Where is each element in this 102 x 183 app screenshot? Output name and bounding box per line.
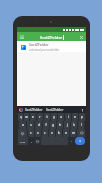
staticText: x (37, 131, 39, 135)
button[interactable]: r (37, 113, 43, 121)
button[interactable]: y (51, 113, 57, 121)
button[interactable]: g (50, 121, 56, 129)
button[interactable]: Backspace (77, 129, 85, 137)
button[interactable]: w (24, 113, 29, 121)
staticText: s (30, 123, 32, 127)
button[interactable]: . (69, 137, 74, 145)
staticText: g (52, 123, 54, 127)
button[interactable]: x (35, 129, 41, 137)
button[interactable]: h (57, 121, 63, 129)
staticText: r (39, 115, 41, 119)
staticText: q (20, 115, 22, 119)
button[interactable]: i (65, 113, 71, 121)
button[interactable]: o (72, 113, 78, 121)
staticText: u (60, 115, 62, 119)
button[interactable]: SortZFolder (28, 34, 76, 40)
button[interactable]: ?123 (18, 137, 28, 145)
button[interactable]: e (30, 113, 36, 121)
button[interactable]: z (28, 129, 34, 137)
staticText: b (58, 131, 60, 135)
staticText: a (22, 123, 24, 127)
button[interactable]: Voice input (80, 108, 84, 112)
button[interactable]: l (78, 121, 84, 129)
button[interactable]: Language (35, 137, 40, 145)
button[interactable]: k (71, 121, 77, 129)
button[interactable]: SortZFolder (17, 41, 86, 52)
button[interactable]: j (64, 121, 70, 129)
staticText: . (71, 139, 72, 143)
staticText: SortZFolder (29, 42, 49, 47)
staticText: SortZFolder (40, 35, 63, 40)
button[interactable]: v (49, 129, 55, 137)
button[interactable]: u (58, 113, 64, 121)
staticText: k (73, 123, 75, 127)
button[interactable]: Menu (19, 34, 25, 40)
button[interactable]: f (43, 121, 49, 129)
staticText: h (59, 123, 61, 127)
button[interactable]: c (42, 129, 48, 137)
staticText: z (30, 131, 32, 135)
button[interactable]: Clear (78, 34, 84, 40)
staticText: j (67, 123, 68, 127)
button[interactable]: a (19, 121, 26, 129)
staticText: i (68, 115, 69, 119)
button[interactable]: b (56, 129, 62, 137)
button[interactable]: d (35, 121, 42, 129)
staticText: ?123 (20, 140, 26, 143)
button[interactable]: Search (75, 137, 85, 145)
staticText: m (72, 131, 75, 135)
staticText: o (74, 115, 76, 119)
button[interactable]: Emoji (29, 137, 34, 145)
staticText: solutions/you.sortzfolder (29, 48, 60, 52)
staticText: t (46, 115, 48, 119)
staticText: y (53, 115, 55, 119)
button[interactable]: s (27, 121, 34, 129)
button[interactable]: p (79, 113, 85, 121)
button[interactable]: m (70, 129, 76, 137)
button[interactable]: SortZFolder (25, 108, 43, 112)
button[interactable]: Shift (18, 129, 27, 137)
staticText: c (44, 131, 46, 135)
staticText: w (25, 115, 28, 119)
staticText: d (38, 123, 40, 127)
staticText: v (51, 131, 53, 135)
staticText: SortZFolder (25, 108, 43, 112)
staticText: n (65, 131, 67, 135)
button[interactable]: SortZFolder (46, 108, 64, 112)
button[interactable]: q (18, 113, 23, 121)
staticText: f (45, 123, 47, 127)
staticText: p (81, 115, 83, 119)
button[interactable]: n (63, 129, 69, 137)
staticText: , (31, 139, 32, 143)
staticText: l (81, 123, 82, 127)
staticText: e (32, 115, 34, 119)
button[interactable]: t (44, 113, 50, 121)
staticText: SortZFolder (46, 108, 64, 112)
